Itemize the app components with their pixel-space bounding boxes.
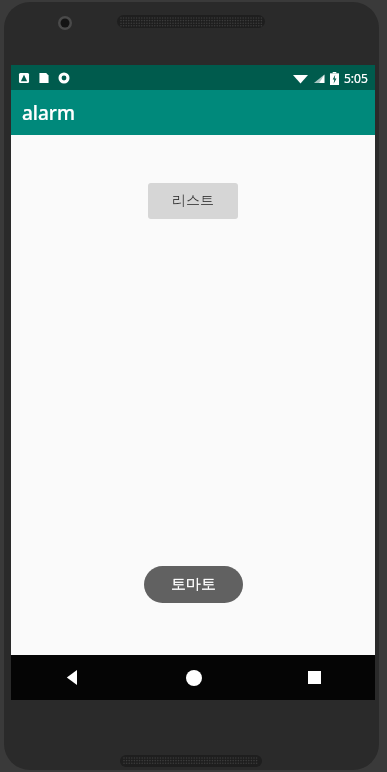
button[interactable]: Home [133, 655, 254, 700]
button[interactable]: Recent apps [254, 655, 375, 700]
staticText: 5:05 [344, 70, 368, 86]
button[interactable]: 리스트 [148, 183, 238, 219]
button[interactable]: Back [11, 655, 133, 700]
staticText: 토마토 [171, 575, 216, 594]
button[interactable]: 토마토 [144, 566, 243, 603]
staticText: 리스트 [172, 192, 214, 210]
staticText: alarm [22, 100, 75, 126]
